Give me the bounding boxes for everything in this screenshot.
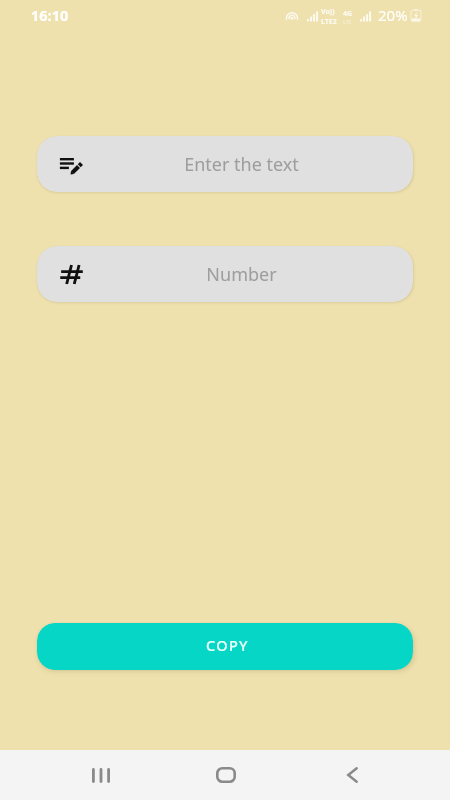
staticText: Number: [206, 262, 277, 287]
staticText: LTE: [343, 19, 352, 26]
button[interactable]: Home: [186, 750, 266, 800]
staticText: 20%: [378, 5, 408, 25]
button[interactable]: Number: [37, 246, 413, 302]
button[interactable]: Recent apps: [61, 750, 141, 800]
staticText: 4G: [343, 9, 353, 19]
button[interactable]: COPY: [37, 623, 413, 670]
staticText: Vo)): [321, 7, 335, 17]
staticText: 16:10: [31, 5, 69, 25]
button[interactable]: Enter the text: [37, 136, 413, 192]
staticText: COPY: [206, 635, 249, 655]
staticText: Enter the text: [184, 152, 299, 177]
button[interactable]: Back: [312, 750, 392, 800]
staticText: LTE2: [321, 17, 337, 27]
